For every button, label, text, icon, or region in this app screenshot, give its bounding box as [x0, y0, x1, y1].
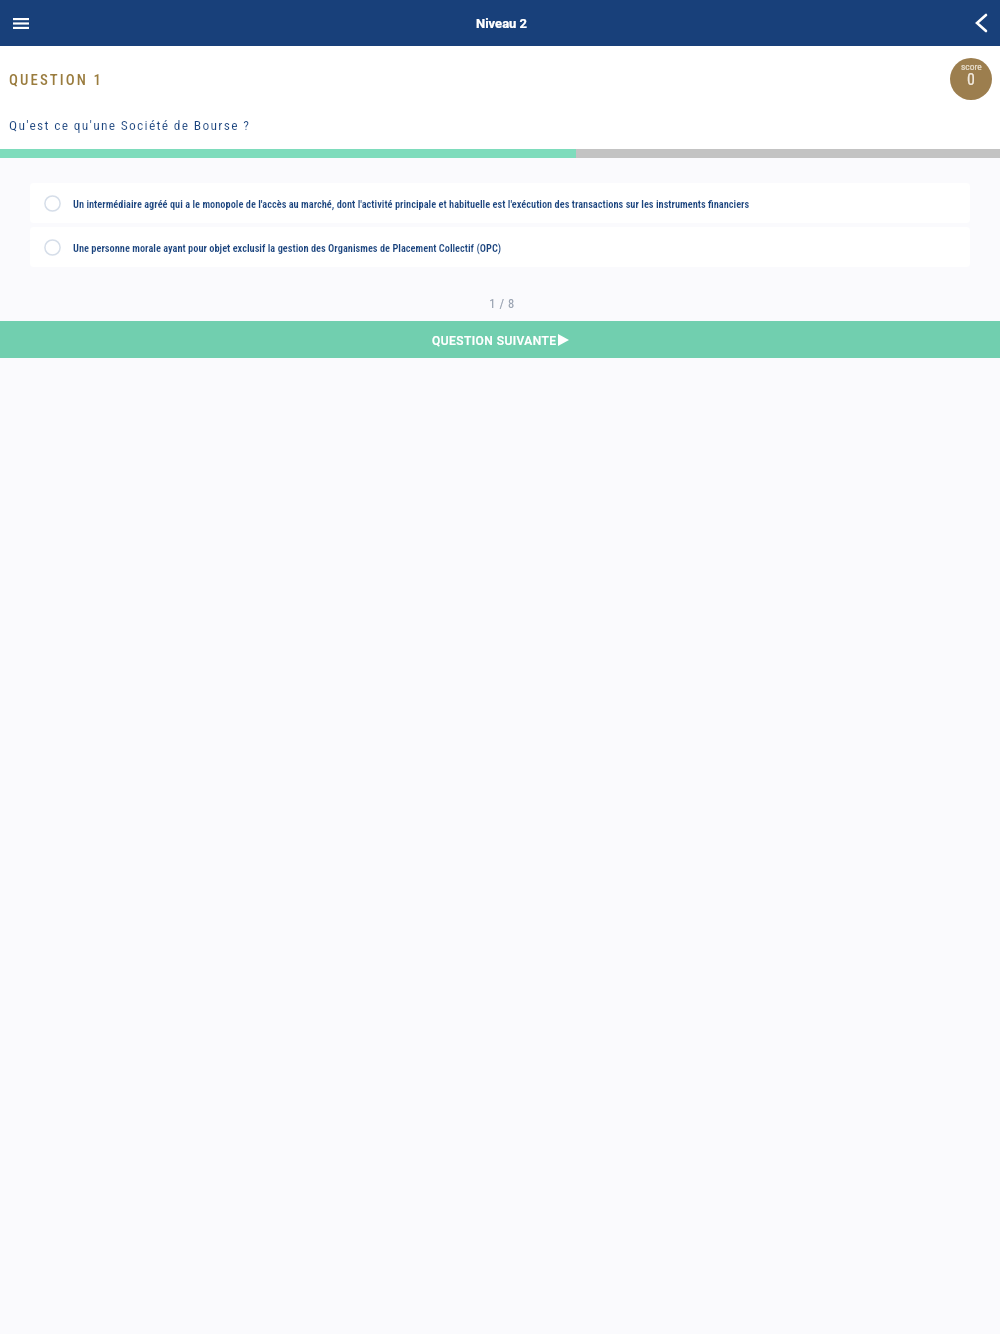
button[interactable]: Une personne morale ayant pour objet exc… — [30, 227, 970, 267]
staticText: QUESTION 1 — [9, 71, 104, 88]
staticText: Niveau 2 — [476, 16, 528, 31]
button[interactable]: Un intermédiaire agréé qui a le monopole… — [30, 183, 970, 223]
staticText: score — [961, 61, 982, 72]
button[interactable]: QUESTION SUIVANTE — [0, 321, 1000, 358]
button[interactable]: score — [950, 58, 992, 100]
button[interactable]: Back — [962, 4, 1000, 42]
staticText: QUESTION SUIVANTE — [432, 334, 557, 348]
staticText: Une personne morale ayant pour objet exc… — [73, 242, 502, 254]
staticText: Qu'est ce qu'une Société de Bourse ? — [9, 117, 251, 133]
staticText: 0 — [967, 70, 975, 89]
staticText: 1 / 8 — [2, 296, 1000, 311]
button[interactable]: Menu — [2, 4, 40, 42]
staticText: Un intermédiaire agréé qui a le monopole… — [73, 198, 750, 210]
